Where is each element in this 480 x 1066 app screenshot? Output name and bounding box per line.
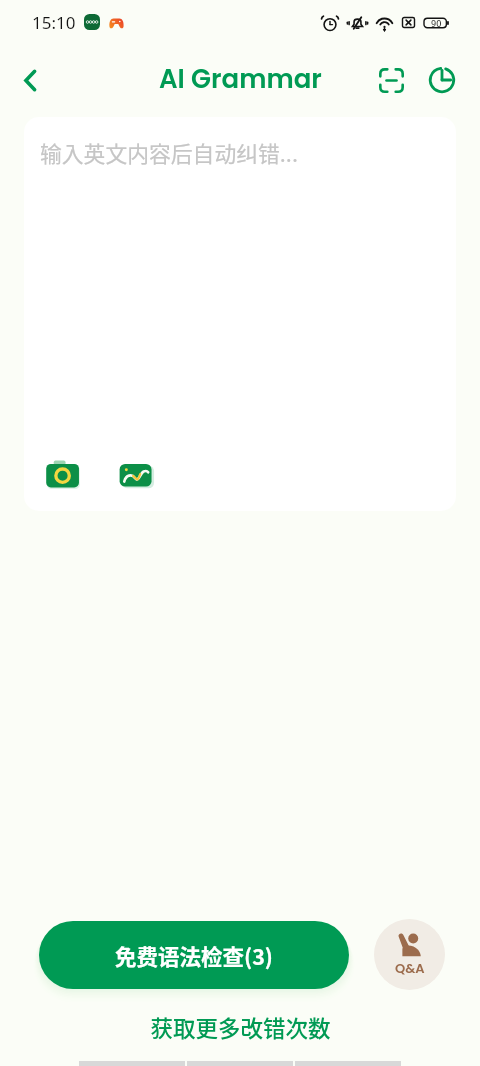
staticText: AI Grammar: [159, 61, 322, 97]
staticText: Q&A: [395, 959, 425, 977]
staticText: 15:10: [32, 11, 76, 34]
staticText: 90: [431, 17, 442, 29]
button[interactable]: Choose image: [114, 452, 158, 496]
staticText: 输入英文内容后自动纠错...: [40, 137, 298, 169]
button[interactable]: 获取更多改错次数: [140, 1006, 341, 1049]
staticText: 免费语法检查(3): [115, 940, 273, 971]
button[interactable]: Back: [6, 56, 54, 104]
button[interactable]: Take photo: [41, 452, 85, 496]
button[interactable]: 免费语法检查(3): [39, 921, 349, 989]
button[interactable]: Scan text: [370, 59, 412, 101]
button[interactable]: Q and A help: [374, 919, 445, 990]
button[interactable]: 输入英文内容后自动纠错...: [24, 117, 456, 511]
button[interactable]: History: [421, 59, 463, 101]
